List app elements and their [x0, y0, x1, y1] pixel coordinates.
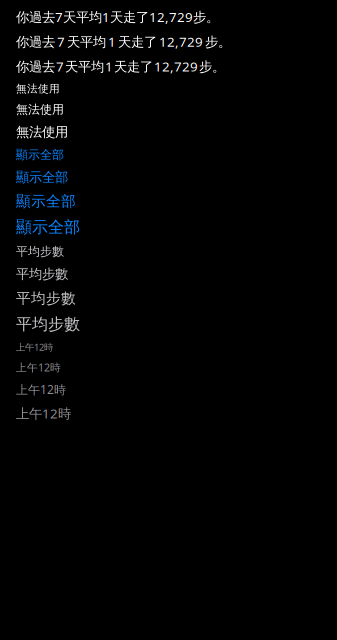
staticText: 平均步數: [16, 289, 76, 307]
staticText: 無法使用: [16, 102, 64, 117]
staticText: 平均步數: [16, 314, 80, 334]
staticText: 無法使用: [16, 124, 68, 140]
staticText: 上午12時: [16, 360, 61, 374]
staticText: 無法使用: [16, 82, 60, 95]
staticText: 顯示全部: [16, 147, 64, 162]
staticText: 上午12時: [16, 404, 71, 422]
staticText: 你過去 7 天平均 1 天走了 12,729 步。: [16, 33, 231, 50]
staticText: 上午12時: [16, 381, 66, 397]
staticText: 顯示全部: [16, 169, 68, 185]
staticText: 平均步數: [16, 266, 68, 282]
staticText: 上午12時: [16, 341, 53, 353]
staticText: 你過去7天平均1天走了12,729步。: [16, 8, 219, 26]
staticText: 顯示全部: [16, 192, 76, 210]
staticText: 你過去 7 天平均 1 天走了 12,729 步。: [16, 57, 225, 75]
staticText: 平均步數: [16, 244, 64, 259]
staticText: 顯示全部: [16, 217, 80, 237]
